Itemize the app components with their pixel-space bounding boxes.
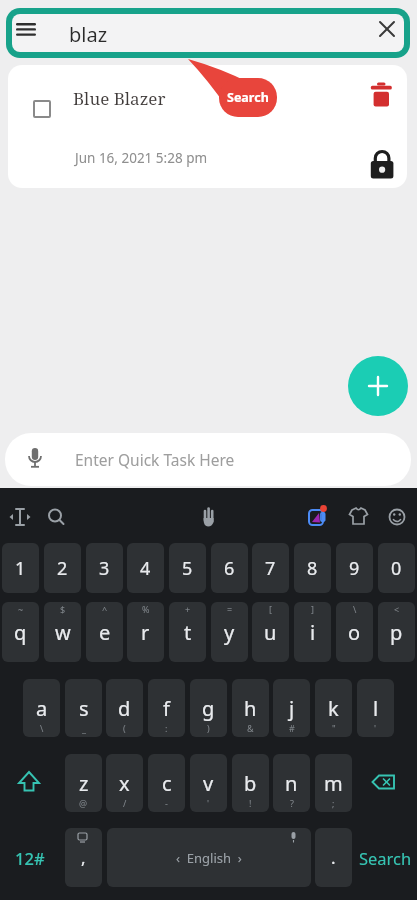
staticText: [ [269, 603, 272, 615]
staticText: ] [311, 603, 314, 615]
button[interactable]: w [44, 602, 81, 662]
staticText: r [141, 619, 150, 646]
staticText: 9 [349, 556, 360, 581]
staticText: ^ [102, 603, 108, 615]
button[interactable]: 9 [336, 543, 373, 593]
button[interactable]: 12# [0, 828, 60, 887]
staticText: % [142, 603, 150, 615]
button[interactable]: 3 [86, 543, 123, 593]
staticText: i [310, 619, 316, 646]
button[interactable]: t [169, 602, 206, 662]
button[interactable]: 0 [378, 543, 415, 593]
button[interactable]: q [2, 602, 39, 662]
button[interactable]: ‹ English › [107, 828, 311, 887]
button[interactable]: y [211, 602, 248, 662]
button[interactable]: k [315, 679, 352, 737]
button[interactable]: 8 [294, 543, 331, 593]
staticText: _ [82, 722, 86, 734]
button[interactable]: b [232, 754, 269, 812]
staticText: blaz [69, 21, 108, 48]
button[interactable]: n [273, 754, 310, 812]
staticText: e [99, 619, 111, 646]
button[interactable] [348, 356, 408, 416]
button[interactable]: . [315, 828, 352, 887]
button[interactable]: o [336, 602, 373, 662]
button[interactable] [8, 65, 407, 188]
staticText: t [184, 619, 192, 646]
staticText: h [244, 695, 257, 722]
button[interactable]: 7 [252, 543, 289, 593]
staticText: ? [290, 797, 294, 809]
staticText: 4 [140, 556, 151, 581]
staticText: : [165, 722, 168, 734]
button[interactable]: 1 [2, 543, 39, 593]
staticText: # [289, 722, 295, 734]
button[interactable]: d [106, 679, 143, 737]
staticText: d [118, 695, 131, 722]
staticText: b [244, 770, 257, 797]
button[interactable]: h [232, 679, 269, 737]
button[interactable]: 6 [211, 543, 248, 593]
staticText: ‹ English › [176, 849, 242, 867]
button[interactable]: v [190, 754, 227, 812]
button[interactable]: i [294, 602, 331, 662]
button[interactable]: f [148, 679, 185, 737]
button[interactable]: p [378, 602, 415, 662]
button[interactable]: m [315, 754, 352, 812]
button[interactable]: g [190, 679, 227, 737]
staticText: l [373, 695, 379, 722]
button[interactable]: l [357, 679, 394, 737]
staticText: s [79, 695, 89, 722]
button[interactable]: r [127, 602, 164, 662]
button[interactable]: j [273, 679, 310, 737]
button[interactable]: Search [354, 828, 417, 887]
staticText: Blue Blazer [73, 87, 166, 110]
staticText: o [348, 619, 361, 646]
staticText: v [203, 770, 214, 797]
staticText: ' [207, 797, 210, 809]
staticText: @ [79, 797, 88, 809]
button[interactable]: x [106, 754, 143, 812]
button[interactable]: Enter Quick Task Here [5, 433, 411, 486]
staticText: / [123, 797, 127, 809]
staticText: 6 [224, 556, 235, 581]
staticText: 12# [15, 847, 45, 869]
staticText: w [55, 619, 71, 646]
staticText: j [289, 695, 295, 722]
button[interactable]: z [65, 754, 102, 812]
button[interactable]: Search [219, 78, 277, 117]
button[interactable] [12, 14, 404, 52]
staticText: 0 [391, 556, 402, 581]
button[interactable] [0, 753, 60, 812]
button[interactable] [356, 753, 417, 812]
staticText: = [227, 603, 233, 615]
staticText: u [264, 619, 277, 646]
staticText: c [162, 770, 172, 797]
staticText: - [165, 797, 168, 809]
staticText: " [332, 722, 336, 734]
staticText: ~ [18, 603, 24, 615]
button[interactable]: e [86, 602, 123, 662]
button[interactable]: 5 [169, 543, 206, 593]
button[interactable]: c [148, 754, 185, 812]
button[interactable]: , [65, 828, 102, 887]
staticText: 2 [57, 556, 68, 581]
button[interactable]: u [252, 602, 289, 662]
staticText: + [185, 603, 191, 615]
button[interactable]: 4 [127, 543, 164, 593]
staticText: Enter Quick Task Here [75, 449, 235, 470]
button[interactable]: s [65, 679, 102, 737]
staticText: ) [207, 722, 210, 734]
staticText: . [331, 846, 336, 869]
staticText: $ [60, 603, 66, 615]
staticText: , [81, 846, 86, 869]
button[interactable]: a [23, 679, 60, 737]
staticText: Jun 16, 2021 5:28 pm [75, 149, 208, 167]
button[interactable] [33, 100, 51, 118]
staticText: k [328, 695, 339, 722]
staticText: 8 [307, 556, 318, 581]
staticText: a [36, 695, 48, 722]
button[interactable]: 2 [44, 543, 81, 593]
staticText: 5 [182, 556, 193, 581]
staticText: 1 [15, 556, 26, 581]
